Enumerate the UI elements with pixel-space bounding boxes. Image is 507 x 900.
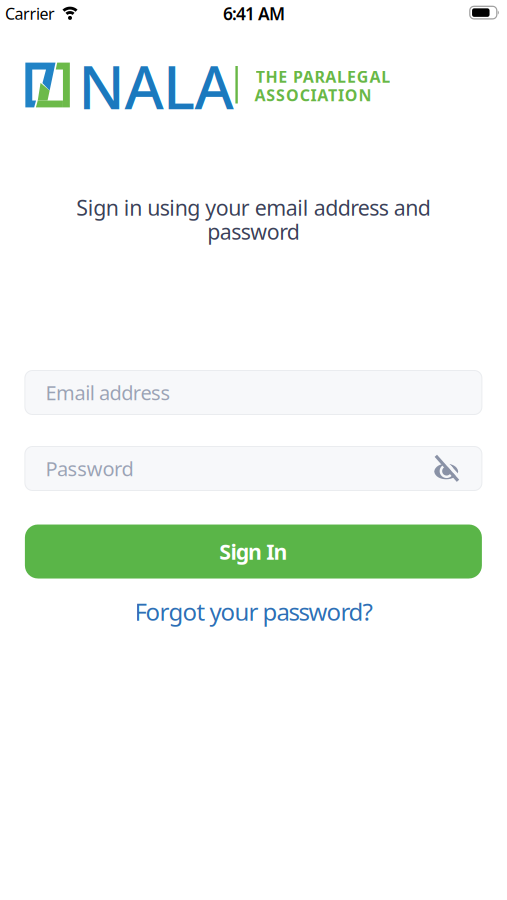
- button[interactable]: Forgot your password?: [134, 596, 372, 627]
- button[interactable]: Password: [24, 446, 482, 491]
- staticText: Email address: [45, 379, 171, 406]
- staticText: Carrier: [5, 3, 55, 24]
- staticText: ASSOCIATION: [254, 84, 371, 106]
- button[interactable]: Sign In: [25, 524, 482, 578]
- staticText: Sign in using your email address and: [76, 193, 431, 222]
- staticText: password: [207, 217, 300, 246]
- staticText: Password: [45, 455, 134, 482]
- staticText: 6:41 AM: [223, 2, 285, 25]
- staticText: Sign In: [219, 537, 287, 566]
- staticText: NALA: [78, 46, 233, 126]
- staticText: Forgot your password?: [134, 596, 372, 627]
- staticText: THE PARALEGAL: [256, 66, 390, 87]
- button[interactable]: Email address: [24, 370, 482, 415]
